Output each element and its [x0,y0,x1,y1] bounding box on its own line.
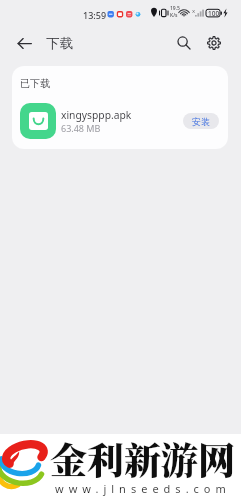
button[interactable]: 安装 [183,113,219,129]
staticText: 19.5 K/s [170,5,180,18]
staticText: x [192,7,196,15]
staticText: www.jlnseeds.com [55,481,231,496]
staticText: 安装 [192,116,210,127]
staticText: 已下载 [20,77,50,90]
button[interactable]: Search [167,26,201,60]
staticText: 13:59 [83,9,107,21]
staticText: 下载 [46,35,73,52]
button[interactable]: Settings [197,26,231,60]
staticText: 100 [208,9,220,18]
staticText: xingysppp.apk [61,108,132,122]
button[interactable]: xingysppp.apk [12,99,228,143]
staticText: 63.48 MB [61,122,101,134]
staticText: 金利新游网 [50,431,235,484]
button[interactable]: Back [7,26,41,60]
